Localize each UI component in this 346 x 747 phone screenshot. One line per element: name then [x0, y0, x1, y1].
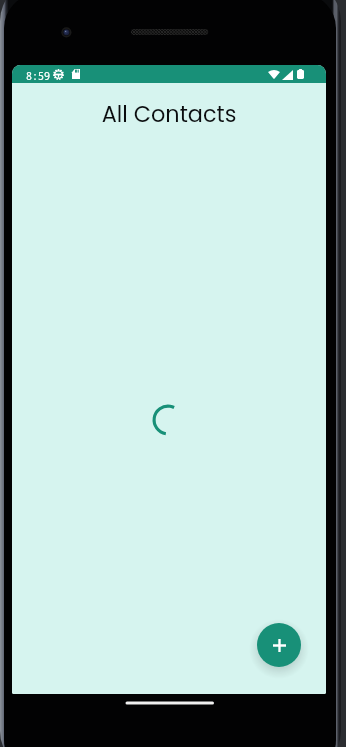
button[interactable]: Add contact	[257, 623, 301, 667]
staticText: All Contacts	[12, 98, 326, 129]
staticText: 8:59	[26, 69, 50, 83]
